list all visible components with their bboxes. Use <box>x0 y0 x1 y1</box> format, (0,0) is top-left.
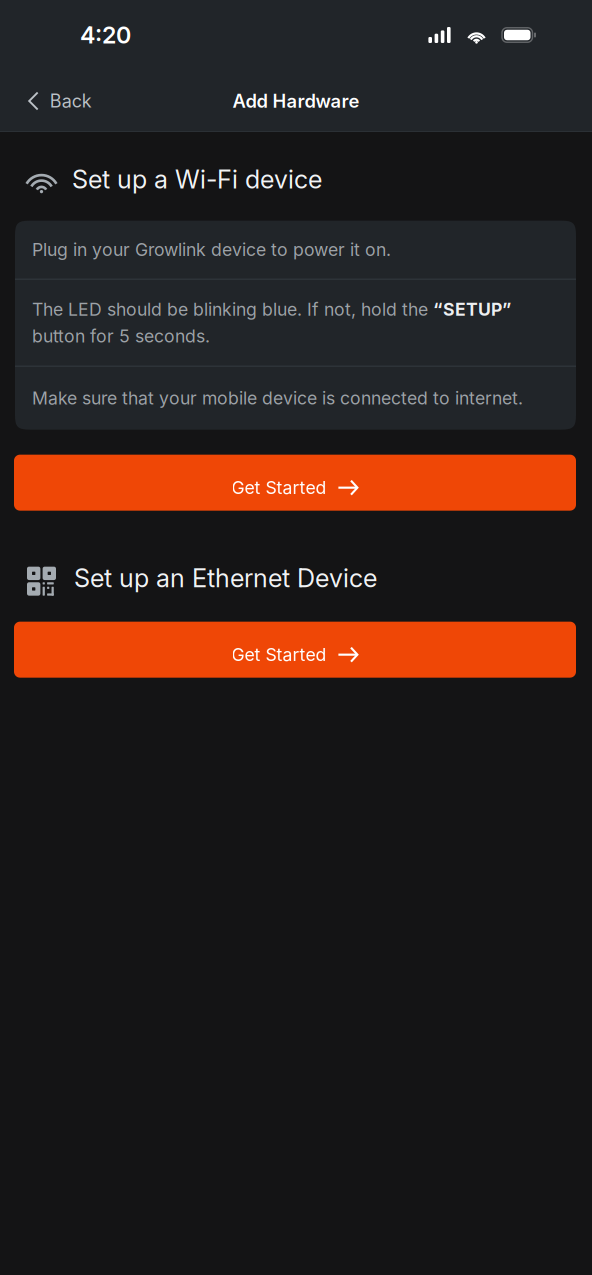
button[interactable]: Back <box>0 77 114 125</box>
button[interactable]: Get Started <box>14 622 576 678</box>
staticText: Add Hardware <box>232 90 359 112</box>
staticText: Set up an Ethernet Device <box>74 563 377 593</box>
staticText: Set up a Wi-Fi device <box>72 164 322 195</box>
staticText: The LED should be blinking blue. If not,… <box>32 299 511 346</box>
button[interactable]: Get Started <box>14 455 576 511</box>
staticText: Plug in your Growlink device to power it… <box>32 239 391 260</box>
staticText: Back <box>50 90 92 112</box>
staticText: Get Started <box>231 477 326 498</box>
staticText: Get Started <box>231 644 326 665</box>
staticText: Make sure that your mobile device is con… <box>32 387 523 409</box>
staticText: 4:20 <box>80 21 131 49</box>
